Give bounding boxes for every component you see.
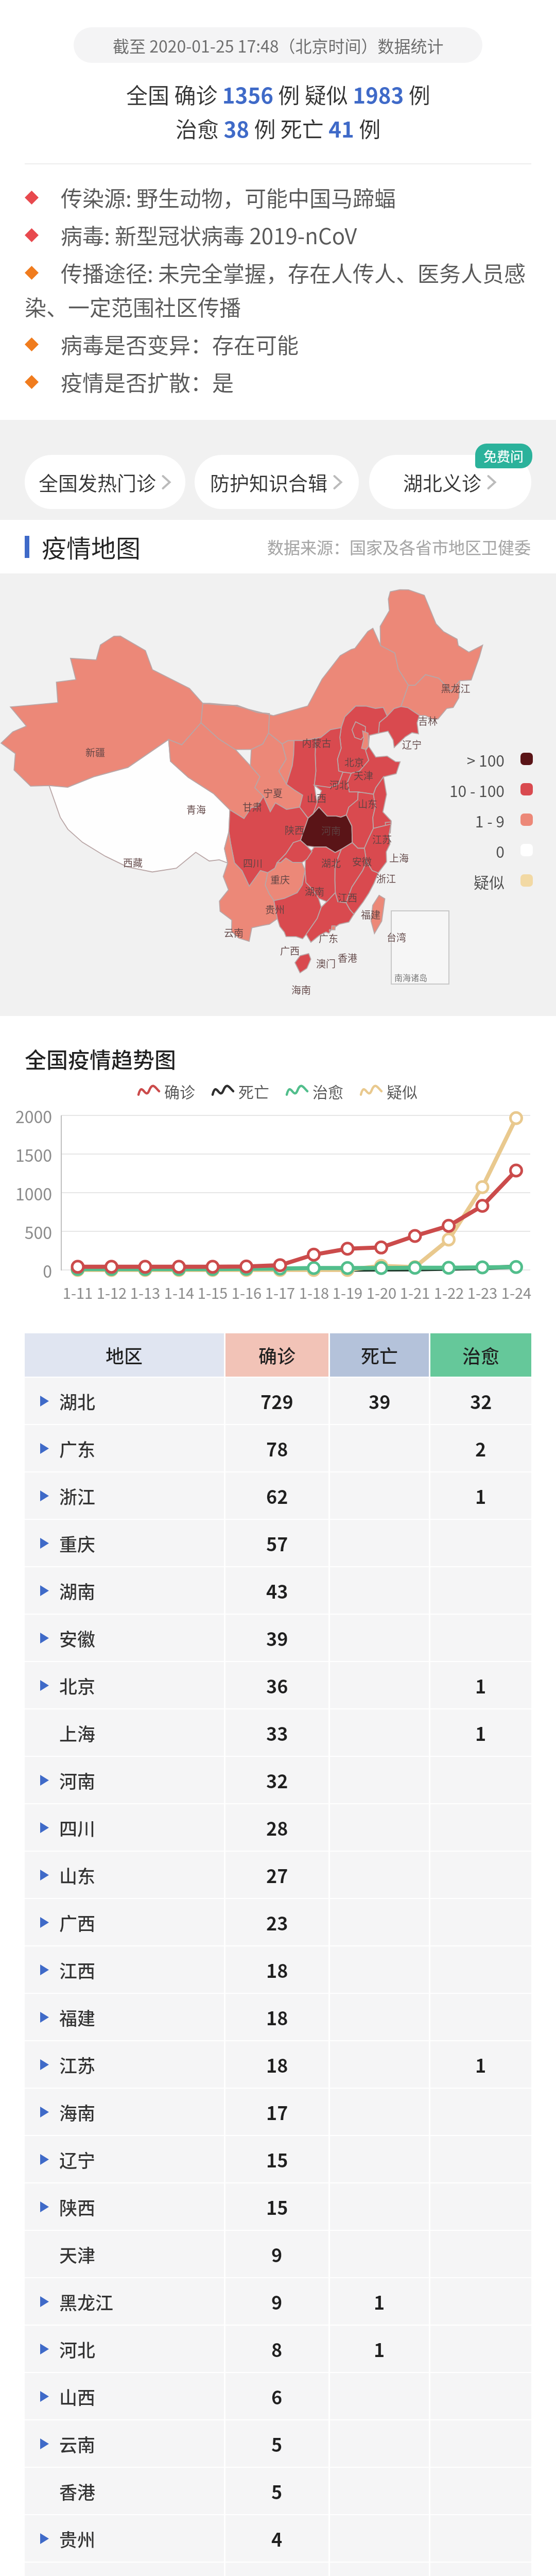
button[interactable]: 湖北: [25, 1378, 531, 1424]
staticText: 32: [470, 1387, 492, 1414]
staticText: > 100: [391, 749, 505, 771]
staticText: 1: [374, 2288, 385, 2315]
staticText: 1500: [0, 1143, 52, 1166]
staticText: 截至 2020-01-25 17:48（北京时间）数据统计: [113, 33, 444, 57]
staticText: 9: [271, 2241, 283, 2267]
staticText: 治愈: [312, 1080, 343, 1102]
staticText: 天津: [338, 768, 389, 783]
staticText: 湖南: [289, 884, 340, 899]
staticText: 病毒是否变异：存在可能: [25, 328, 299, 360]
staticText: 山西: [291, 791, 342, 805]
button[interactable]: 湖南: [25, 1567, 531, 1614]
staticText: 1-23: [457, 1281, 508, 1303]
staticText: 1-21: [389, 1281, 441, 1303]
staticText: 2: [475, 1435, 486, 1462]
staticText: 浙江: [360, 871, 412, 886]
staticText: 湖北: [305, 856, 357, 870]
button[interactable]: 上海: [25, 1709, 531, 1756]
button[interactable]: 山西: [25, 2373, 531, 2419]
button[interactable]: 江苏: [25, 2041, 531, 2088]
button[interactable]: 广东: [25, 1425, 531, 1471]
staticText: 重庆: [254, 872, 306, 887]
staticText: 死亡: [238, 1080, 269, 1102]
button[interactable]: 防护知识合辑: [195, 455, 359, 509]
staticText: 23: [266, 1909, 288, 1936]
staticText: 6: [271, 2383, 283, 2410]
staticText: 病毒: 新型冠状病毒 2019-nCoV: [25, 219, 357, 250]
staticText: 广西: [59, 1909, 96, 1936]
staticText: 澳门: [300, 956, 352, 971]
staticText: 陕西: [59, 2194, 96, 2220]
staticText: 5: [271, 2478, 283, 2504]
button[interactable]: 安徽: [25, 1615, 531, 1661]
staticText: 治愈: [462, 1342, 500, 1368]
staticText: 河北: [59, 2336, 96, 2362]
staticText: 湖北: [59, 1388, 96, 1414]
button[interactable]: 河南: [25, 1757, 531, 1803]
button[interactable]: 贵州: [25, 2515, 531, 2562]
button[interactable]: 海南: [25, 2089, 531, 2135]
staticText: 广西: [264, 943, 316, 958]
staticText: 1 - 9: [391, 809, 505, 832]
staticText: 39: [369, 1387, 391, 1414]
staticText: 15: [266, 2193, 288, 2220]
staticText: 上海: [373, 851, 425, 865]
staticText: 32: [266, 1767, 288, 1793]
staticText: 0: [391, 840, 505, 862]
staticText: 防护知识合辑: [210, 468, 328, 496]
button[interactable]: 湖北义诊: [369, 455, 531, 509]
staticText: 贵州: [59, 2526, 96, 2552]
staticText: 宁夏: [247, 786, 299, 800]
button[interactable]: 江西: [25, 1946, 531, 1993]
staticText: 四川: [59, 1815, 96, 1841]
staticText: 台湾: [371, 930, 422, 944]
button[interactable]: 香港: [25, 2468, 531, 2514]
staticText: 78: [266, 1435, 288, 1462]
staticText: 死亡: [361, 1342, 398, 1368]
button[interactable]: 北京: [25, 1662, 531, 1708]
staticText: 新疆: [69, 745, 121, 759]
button[interactable]: 黑龙江: [25, 2278, 531, 2325]
button[interactable]: 山东: [25, 1852, 531, 1898]
staticText: 山西: [59, 2383, 96, 2410]
button[interactable]: 广西: [25, 1899, 531, 1945]
staticText: 安徽: [59, 1625, 96, 1651]
staticText: 辽宁: [59, 2146, 96, 2173]
staticText: 山东: [59, 1862, 96, 1888]
staticText: 2000: [0, 1104, 52, 1128]
staticText: 8: [271, 2335, 283, 2362]
button[interactable]: 天津: [25, 2231, 531, 2277]
button[interactable]: 河北: [25, 2326, 531, 2372]
staticText: 安徽: [336, 854, 388, 869]
staticText: 1: [475, 1672, 486, 1699]
staticText: 江西: [322, 890, 373, 905]
staticText: 天津: [59, 2241, 96, 2267]
staticText: 贵州: [249, 902, 301, 917]
button[interactable]: 辽宁: [25, 2136, 531, 2182]
staticText: 浙江: [59, 1483, 96, 1509]
staticText: 33: [266, 1719, 288, 1746]
staticText: 39: [266, 1624, 288, 1651]
staticText: 确诊: [258, 1342, 296, 1368]
button[interactable]: 重庆: [25, 1520, 531, 1566]
staticText: 数据来源：国家及各省市地区卫健委: [267, 535, 531, 558]
staticText: 海南: [275, 982, 327, 997]
button[interactable]: 浙江: [25, 1472, 531, 1519]
staticText: 全国 确诊 1356 例 疑似 1983 例: [126, 78, 430, 110]
staticText: 18: [266, 1956, 288, 1983]
button[interactable]: 陕西: [25, 2183, 531, 2230]
button[interactable]: 四川: [25, 1804, 531, 1851]
staticText: 全国发热门诊: [39, 468, 157, 496]
button[interactable]: 福建: [25, 1994, 531, 2040]
staticText: 北京: [59, 1672, 96, 1699]
staticText: 江苏: [356, 832, 408, 846]
staticText: 5: [271, 2430, 283, 2457]
button[interactable]: 全国发热门诊: [25, 455, 185, 509]
staticText: 1-15: [187, 1281, 238, 1303]
staticText: 62: [266, 1482, 288, 1509]
button[interactable]: 云南: [25, 2420, 531, 2467]
staticText: 传播途径: 未完全掌握，存在人传人、医务人员感染、一定范围社区传播: [25, 257, 537, 322]
staticText: 729: [260, 1387, 293, 1414]
